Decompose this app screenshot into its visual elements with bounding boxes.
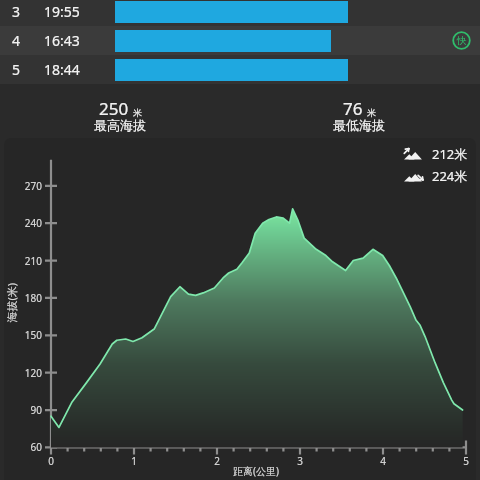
staticText: 224米 (432, 167, 468, 185)
staticText: 5 (12, 60, 21, 79)
staticText: 250 (99, 97, 129, 120)
staticText: 米 (367, 107, 376, 118)
button[interactable]: 4 (0, 26, 480, 55)
button[interactable]: 3 (0, 0, 480, 26)
staticText: 米 (133, 107, 142, 118)
staticText: 180 (18, 291, 42, 305)
staticText: 19:55 (44, 2, 80, 21)
staticText: 3 (12, 2, 21, 21)
staticText: 最高海拔 (94, 117, 146, 133)
staticText: 快 (457, 34, 467, 47)
button[interactable]: 5 (0, 55, 480, 84)
staticText: 1 (124, 454, 144, 468)
staticText: 18:44 (44, 60, 80, 79)
staticText: 最低海拔 (333, 117, 385, 133)
staticText: 76 (343, 97, 363, 120)
staticText: 150 (18, 328, 42, 342)
staticText: 0 (41, 454, 61, 468)
staticText: 120 (18, 366, 42, 380)
staticText: 240 (18, 216, 42, 230)
staticText: 270 (18, 179, 42, 193)
staticText: 距离(公里) (233, 464, 279, 478)
staticText: 4 (12, 31, 21, 50)
staticText: 4 (373, 454, 393, 468)
button[interactable]: 快 badge (452, 31, 471, 50)
staticText: 212米 (432, 145, 468, 163)
staticText: 2 (207, 454, 227, 468)
staticText: 海拔(米) (4, 282, 18, 322)
staticText: 60 (18, 440, 42, 454)
staticText: 16:43 (44, 31, 80, 50)
staticText: 210 (18, 254, 42, 268)
staticText: 90 (18, 403, 42, 417)
staticText: 5 (456, 454, 476, 468)
staticText: 3 (290, 454, 310, 468)
